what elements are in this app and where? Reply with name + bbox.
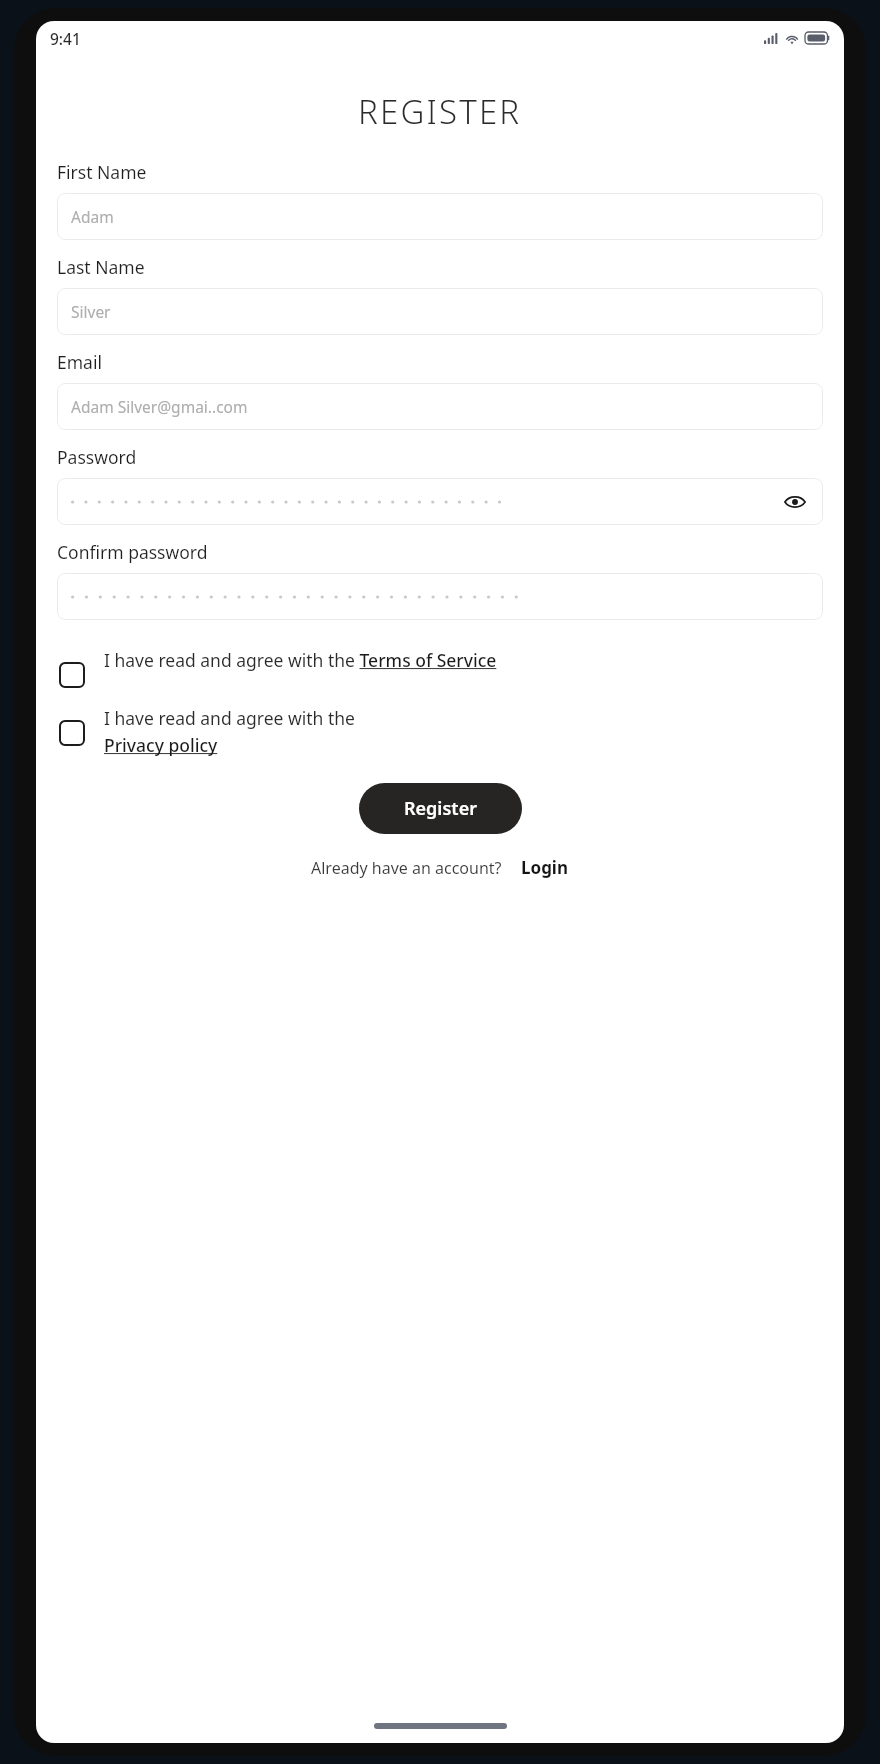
staticText: I have read and agree with the Terms of … (104, 648, 823, 672)
button[interactable]: Login (521, 856, 569, 879)
button[interactable]: Show password (781, 488, 809, 516)
button[interactable]: Agree checkbox (59, 662, 85, 688)
staticText: Login (521, 856, 569, 879)
staticText: Email (57, 350, 102, 374)
staticText: First Name (57, 160, 147, 184)
staticText: Password (57, 445, 137, 469)
staticText: Silver (71, 301, 809, 322)
staticText: Already have an account? (311, 857, 502, 879)
staticText: Adam (71, 206, 809, 227)
button[interactable]: Agree checkbox (59, 720, 85, 746)
staticText: Adam Silver@gmai..com (71, 396, 809, 417)
staticText: Last Name (57, 255, 145, 279)
button[interactable]: Adam Silver@gmai..com (57, 383, 823, 430)
button[interactable]: Register (359, 783, 522, 834)
staticText: 9:41 (50, 28, 81, 49)
staticText: Register (404, 796, 477, 821)
staticText: Confirm password (57, 540, 208, 564)
button[interactable]: Agree checkbox (57, 648, 823, 688)
button[interactable]: Adam (57, 193, 823, 240)
staticText: REGISTER (358, 89, 522, 134)
button[interactable]: Silver (57, 288, 823, 335)
staticText: I have read and agree with the Privacy p… (104, 706, 823, 757)
button[interactable] (57, 573, 823, 620)
button[interactable]: Agree checkbox (57, 706, 823, 757)
button[interactable]: Show password (57, 478, 823, 525)
